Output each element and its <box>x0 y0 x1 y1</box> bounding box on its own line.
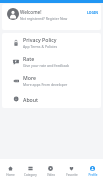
button[interactable]: Rate <box>2 52 101 71</box>
staticText: Video <box>47 173 55 177</box>
button[interactable]: LOGIN <box>85 8 101 17</box>
button[interactable]: Home <box>0 159 20 183</box>
button[interactable]: About <box>2 90 101 108</box>
button[interactable]: Welcome! <box>2 4 101 30</box>
staticText: LOGIN <box>87 10 99 15</box>
button[interactable]: Privacy Policy <box>2 33 101 52</box>
staticText: Privacy Policy <box>23 36 57 43</box>
staticText: Home <box>6 173 15 177</box>
button[interactable]: Category <box>20 159 40 183</box>
button[interactable]: Profile <box>82 159 103 183</box>
staticText: More <box>23 74 36 81</box>
button[interactable]: More <box>2 71 101 90</box>
staticText: Profile <box>88 173 98 177</box>
button[interactable]: Favorite <box>61 159 82 183</box>
staticText: Rate <box>23 55 35 62</box>
button[interactable]: Video <box>40 159 61 183</box>
staticText: Favorite <box>66 173 78 177</box>
staticText: App Terms & Policies <box>23 44 58 49</box>
staticText: Not registered? Register Now <box>20 16 68 21</box>
staticText: Category <box>24 173 37 177</box>
staticText: More apps From developer <box>23 82 68 87</box>
staticText: Welcome! <box>20 9 42 15</box>
staticText: Give your rate and feedback <box>23 63 70 68</box>
staticText: About <box>23 96 39 103</box>
